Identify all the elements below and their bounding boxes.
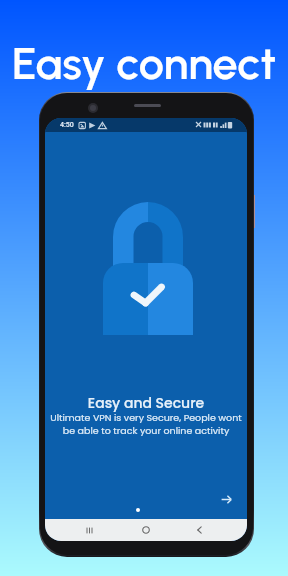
staticText: 4:50 bbox=[60, 121, 74, 129]
button[interactable]: Back bbox=[185, 519, 213, 541]
button[interactable]: Next bbox=[213, 487, 239, 512]
button[interactable]: Home bbox=[132, 519, 160, 541]
staticText: Ultimate VPN is very Secure, People wont… bbox=[45, 411, 247, 437]
staticText: Easy connect bbox=[0, 36, 288, 90]
button[interactable]: Recents bbox=[75, 519, 103, 541]
staticText: Easy and Secure bbox=[45, 393, 247, 413]
